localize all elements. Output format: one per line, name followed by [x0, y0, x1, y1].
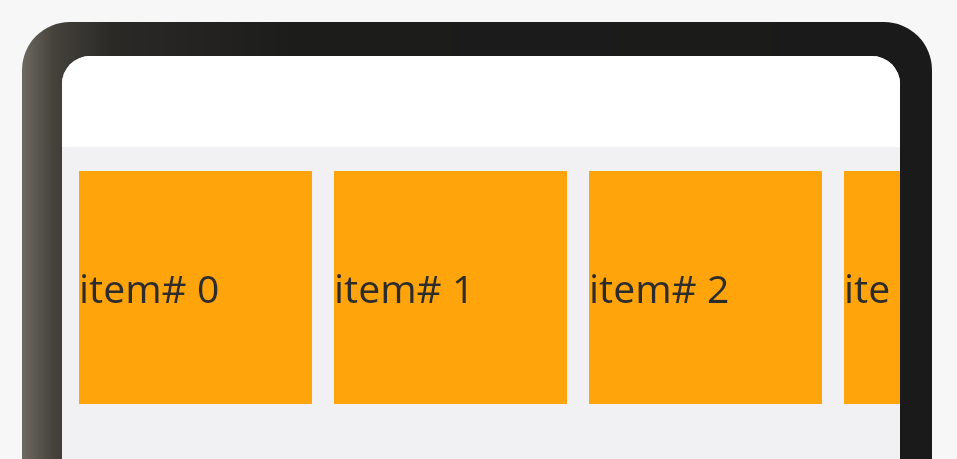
button[interactable]: item# 0	[79, 171, 312, 404]
staticText: item# 1	[334, 261, 475, 314]
staticText: item# 0	[79, 261, 220, 314]
staticText: item# 2	[589, 261, 730, 314]
button[interactable]: item# 3	[844, 171, 900, 404]
button[interactable]: item# 1	[334, 171, 567, 404]
staticText: item# 3	[844, 261, 900, 314]
button[interactable]: item# 2	[589, 171, 822, 404]
